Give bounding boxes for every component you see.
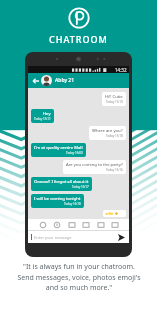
button[interactable]: I'm at quality centre Mall <box>31 143 86 157</box>
staticText: Today 15:10 <box>106 100 123 104</box>
button[interactable]: Today 16:19 <box>103 210 126 217</box>
staticText: Today 16:00 <box>66 151 83 155</box>
staticText: "It is always fun in your chatroom. Send… <box>17 262 141 292</box>
staticText: Today 16:18 <box>64 202 81 206</box>
button[interactable]: Attach <box>52 220 61 229</box>
button[interactable]: I will be coming tonight <box>31 194 84 208</box>
staticText: I will be coming tonight <box>34 196 81 202</box>
staticText: Today 15:18 <box>106 134 123 138</box>
staticText: Today 16:17 <box>72 185 89 189</box>
staticText: Hey <box>43 111 51 117</box>
staticText: I'm at quality centre Mall <box>34 145 83 151</box>
staticText: Abby 21 <box>55 77 75 84</box>
button[interactable]: Gallery <box>81 220 90 229</box>
staticText: CHATROOM <box>49 33 108 45</box>
staticText: Where are you? <box>92 128 123 134</box>
button[interactable]: Video <box>110 220 119 229</box>
button[interactable]: Hey <box>31 109 54 123</box>
button[interactable]: Emoji <box>38 220 47 229</box>
button[interactable]: Where are you? <box>89 126 126 140</box>
staticText: Today 15:11 <box>34 117 51 121</box>
staticText: Oooow!! I forgot all about it <box>34 179 89 185</box>
button[interactable]: Oooow!! I forgot all about it <box>31 177 92 191</box>
button[interactable]: Hi!! Cutie <box>102 92 126 106</box>
button[interactable]: Back <box>31 76 40 85</box>
staticText: Are you coming to the party? <box>66 162 123 168</box>
staticText: Today 16:16 <box>106 168 123 172</box>
staticText: 14:32 <box>115 67 127 73</box>
button[interactable]: Are you coming to the party? <box>63 160 126 174</box>
staticText: Enter your message <box>34 235 72 240</box>
button[interactable]: Send <box>117 233 126 242</box>
button[interactable]: Contact <box>96 220 105 229</box>
button[interactable]: Enter your message <box>28 231 129 243</box>
button[interactable]: Back <box>28 73 129 88</box>
button[interactable]: Camera <box>67 220 76 229</box>
staticText: Hi!! Cutie <box>105 94 123 100</box>
